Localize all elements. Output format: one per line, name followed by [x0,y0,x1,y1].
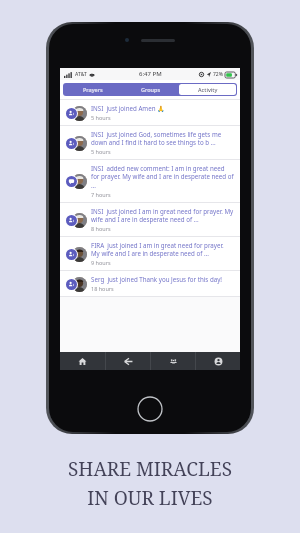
button[interactable]: Home [60,352,105,370]
button[interactable]: Serg just joined Thank you Jesus for thi… [60,270,240,296]
button[interactable]: Profile [196,352,240,370]
button[interactable]: Groups [122,84,179,95]
staticText: 7 hours [91,191,111,198]
staticText: IN OUR LIVES [87,485,213,511]
staticText: Activity [198,86,218,93]
staticText: 9 hours [91,259,111,266]
button[interactable]: INSI just joined I am in great need for … [60,202,240,236]
staticText: INSI added new comment: I am in great ne… [91,164,234,189]
button[interactable]: Groups [151,352,195,370]
staticText: INSI just joined God, sometimes life get… [91,130,234,146]
staticText: INSI just joined I am in great need for … [91,207,234,223]
staticText: INSI just joined Amen 🙏 [91,104,165,112]
staticText: Groups [141,86,161,93]
button[interactable]: FIRA just joined I am in great need for … [60,236,240,270]
button[interactable]: Activity [179,84,236,95]
button[interactable]: INSI added new comment: I am in great ne… [60,159,240,202]
button[interactable]: INSI just joined God, sometimes life get… [60,125,240,159]
staticText: 6:47 PM [139,70,162,78]
staticText: Serg just joined Thank you Jesus for thi… [91,275,222,283]
staticText: 18 hours [91,285,114,292]
button[interactable]: Prayers [64,84,122,95]
staticText: 72% [213,71,223,78]
staticText: 8 hours [91,225,111,232]
staticText: FIRA just joined I am in great need for … [91,241,234,257]
staticText: 5 hours [91,114,111,121]
staticText: SHARE MIRACLES [68,456,232,482]
staticText: AT&T [75,71,87,78]
staticText: Prayers [83,86,103,93]
button[interactable]: Send prayer [106,352,150,370]
staticText: 5 hours [91,148,111,155]
button[interactable]: INSI just joined Amen 🙏 [60,99,240,125]
